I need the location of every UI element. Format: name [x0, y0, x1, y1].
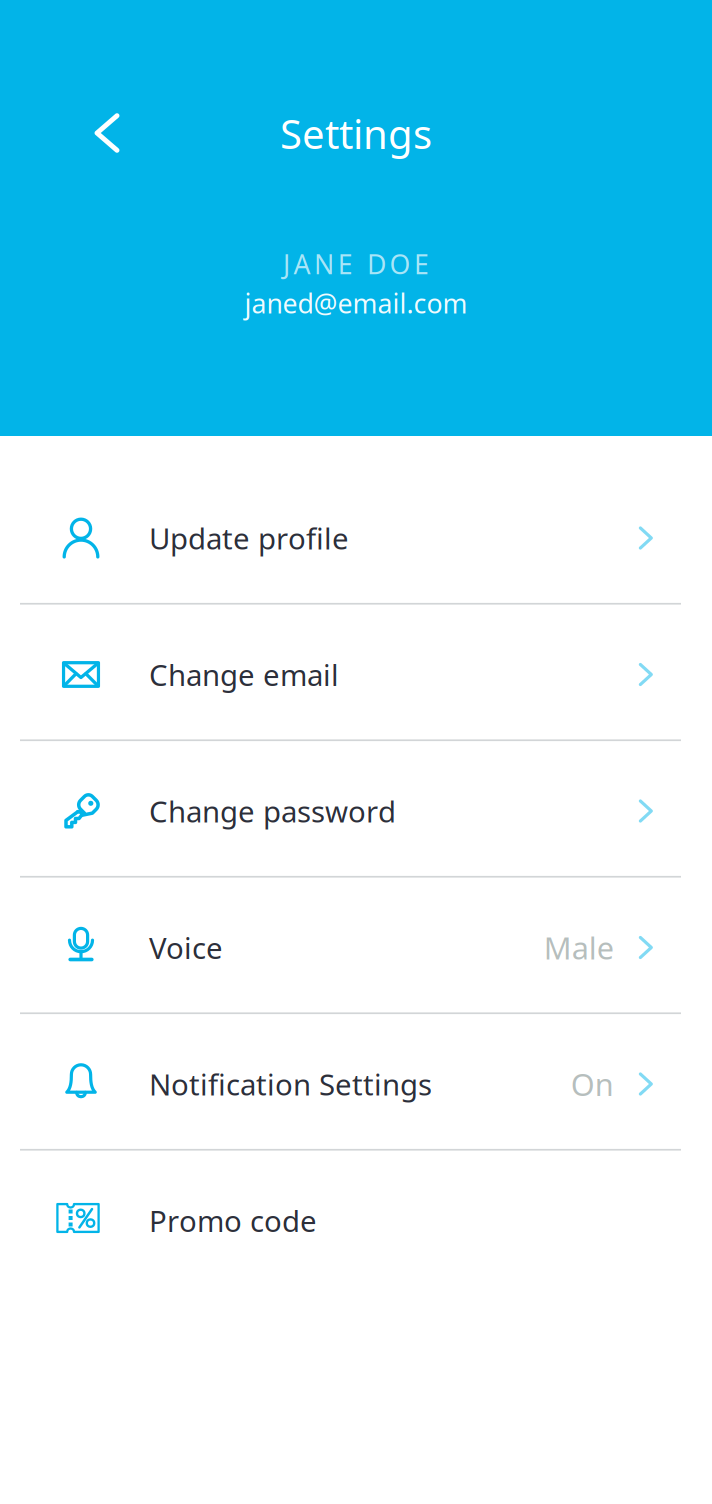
- button[interactable]: Change email: [0, 614, 712, 751]
- staticText: Notification Settings: [149, 1064, 432, 1103]
- button[interactable]: Promo code: [0, 1160, 712, 1275]
- staticText: Male: [544, 927, 614, 968]
- button[interactable]: Voice: [0, 887, 712, 1024]
- button[interactable]: Back: [70, 96, 144, 170]
- button[interactable]: Notification Settings: [0, 1024, 712, 1160]
- staticText: janed@email.com: [244, 285, 467, 321]
- staticText: JANE DOE: [283, 246, 429, 281]
- button[interactable]: Update profile: [0, 478, 712, 614]
- button[interactable]: Change password: [0, 751, 712, 887]
- staticText: Change password: [149, 791, 396, 830]
- staticText: Promo code: [149, 1201, 317, 1240]
- staticText: Update profile: [149, 518, 349, 557]
- staticText: On: [571, 1064, 614, 1104]
- staticText: Change email: [149, 655, 339, 694]
- staticText: Settings: [280, 107, 432, 160]
- staticText: Voice: [149, 928, 223, 967]
